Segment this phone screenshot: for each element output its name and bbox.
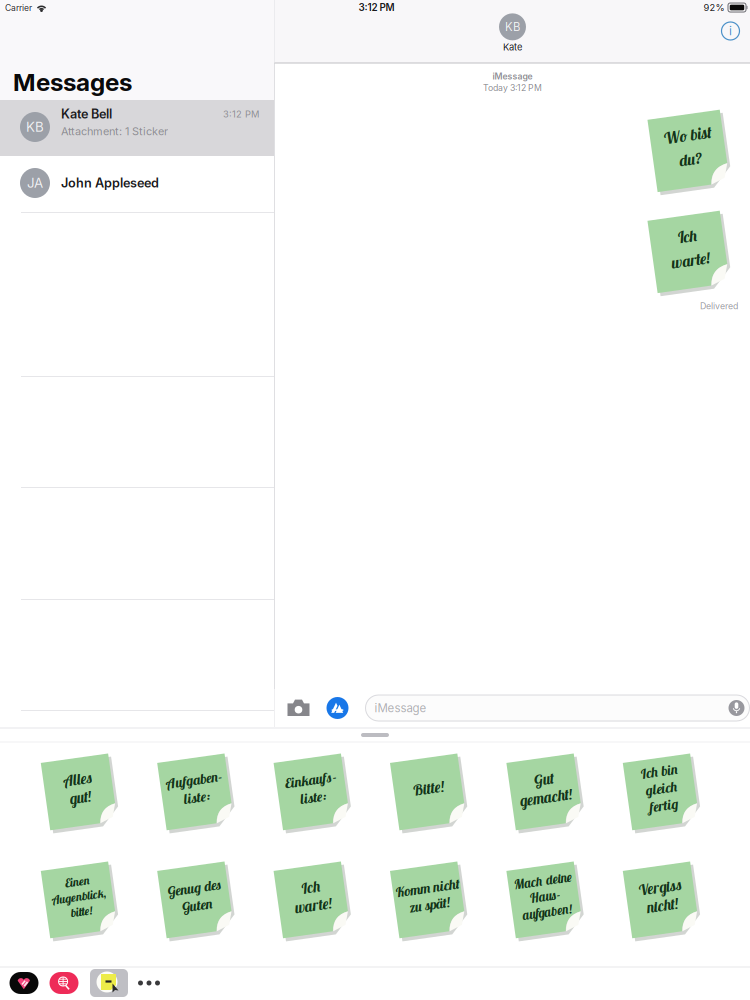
staticText: Bitte! xyxy=(413,779,445,797)
staticText: nicht! xyxy=(646,896,678,914)
staticText: Today 3:12 PM xyxy=(483,82,542,93)
staticText: gleich xyxy=(646,779,678,797)
staticText: 3:12 PM xyxy=(223,108,259,120)
button[interactable]: More apps xyxy=(133,969,165,997)
staticText: Attachment: 1 Sticker xyxy=(61,124,168,138)
staticText: Wo bist xyxy=(666,125,714,145)
staticText: KB xyxy=(505,20,520,34)
button[interactable]: Details xyxy=(716,17,744,45)
staticText: Kate xyxy=(503,41,522,53)
staticText: Delivered xyxy=(700,301,738,311)
staticText: gemacht! xyxy=(519,788,572,806)
button[interactable]: Sticker pack xyxy=(89,968,129,998)
staticText: zu spät! xyxy=(408,896,450,913)
staticText: Genug des xyxy=(169,878,224,896)
button[interactable]: Camera xyxy=(281,693,315,723)
staticText: iMessage xyxy=(492,71,532,81)
staticText: fertig xyxy=(648,797,677,814)
button[interactable]: App Store xyxy=(322,693,352,723)
staticText: warte! xyxy=(670,250,709,270)
staticText: Einen xyxy=(68,873,93,889)
staticText: Alles xyxy=(66,770,95,788)
staticText: Einkaufs- xyxy=(286,770,339,788)
button[interactable]: JA xyxy=(0,156,274,212)
staticText: Messages xyxy=(13,67,132,97)
staticText: bitte! xyxy=(69,904,91,919)
staticText: Guten xyxy=(181,896,212,914)
staticText: Gut xyxy=(536,770,556,788)
staticText: Ich xyxy=(680,226,700,246)
staticText: Ich bin xyxy=(643,762,681,779)
staticText: Carrier xyxy=(5,3,32,13)
staticText: Kate Bell xyxy=(61,106,112,121)
staticText: liste: xyxy=(299,788,326,806)
staticText: iMessage xyxy=(374,701,426,715)
staticText: Augenblick, xyxy=(53,889,108,904)
button[interactable]: KB xyxy=(0,100,274,156)
staticText: Vergiss xyxy=(640,878,684,896)
staticText: warte! xyxy=(294,896,332,914)
staticText: liste: xyxy=(183,788,210,806)
button[interactable]: Images xyxy=(47,968,81,998)
staticText: John Appleseed xyxy=(61,175,159,191)
staticText: Haus- xyxy=(530,888,561,904)
staticText: Aufgaben- xyxy=(168,770,225,788)
staticText: aufgaben! xyxy=(521,904,571,920)
staticText: Mach deine xyxy=(517,872,575,888)
staticText: gut! xyxy=(69,788,91,806)
staticText: i xyxy=(729,24,732,38)
staticText: JA xyxy=(27,175,43,191)
staticText: du? xyxy=(678,149,701,169)
staticText: KB xyxy=(26,119,44,135)
button[interactable]: Message field xyxy=(365,695,749,721)
staticText: Ich xyxy=(303,878,323,896)
staticText: 3:12 PM xyxy=(358,1,394,13)
staticText: 92% xyxy=(703,2,724,13)
staticText: Komm nicht xyxy=(397,879,462,896)
button[interactable]: Digital Touch xyxy=(7,968,41,998)
